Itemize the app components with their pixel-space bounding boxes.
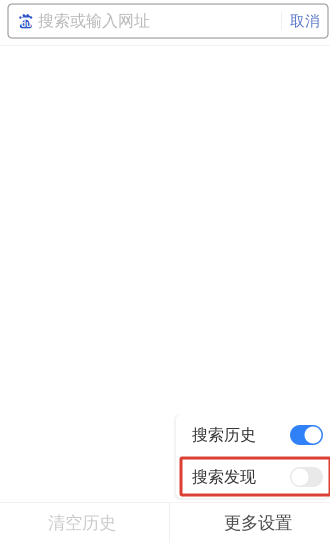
staticText: 取消 xyxy=(290,12,320,30)
button[interactable]: 更多设置 xyxy=(170,503,330,543)
button[interactable]: 清空历史 xyxy=(0,503,169,543)
button[interactable]: 搜索历史 xyxy=(176,414,330,456)
staticText: 搜索或输入网址 xyxy=(38,11,150,31)
staticText: 搜索历史 xyxy=(192,425,256,445)
button[interactable]: 取消 xyxy=(282,4,328,38)
staticText: 更多设置 xyxy=(224,512,292,534)
staticText: 清空历史 xyxy=(48,512,116,534)
staticText: 搜索发现 xyxy=(192,467,256,487)
button[interactable]: 搜索发现 xyxy=(176,456,330,498)
staticText: du xyxy=(21,19,31,29)
